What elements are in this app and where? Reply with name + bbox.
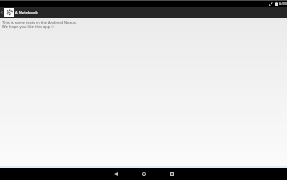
button[interactable]: Home <box>134 168 154 180</box>
staticText: This is some texts in the Android Nexus. <box>2 20 77 25</box>
staticText: We hope you like this app :) <box>2 24 54 29</box>
staticText: A Notebook <box>15 10 38 15</box>
staticText: 6:59 <box>279 1 287 6</box>
other: Navigate up <box>0 11 3 14</box>
button[interactable]: Back <box>106 168 126 180</box>
button[interactable]: Recent apps <box>162 168 182 180</box>
